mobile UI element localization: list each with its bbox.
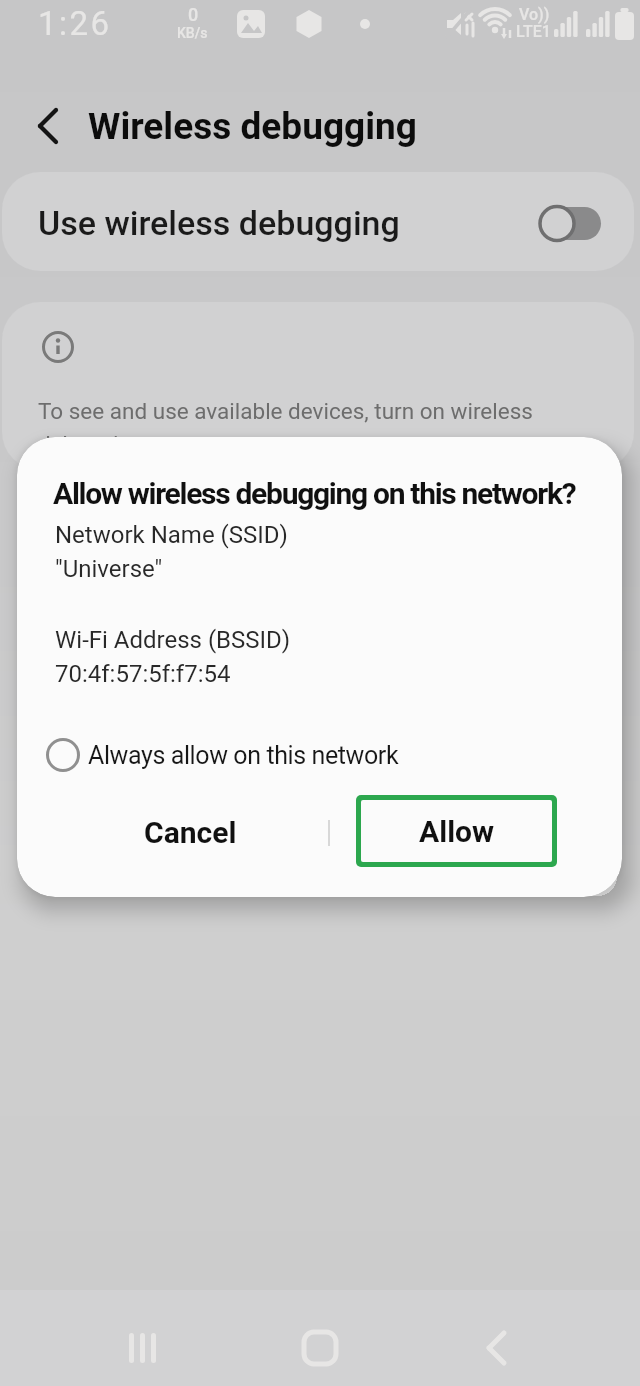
- button[interactable]: [120, 1323, 170, 1373]
- staticText: KB/s: [177, 25, 208, 41]
- button[interactable]: [295, 1323, 345, 1373]
- staticText: Network Name (SSID): [55, 521, 288, 549]
- staticText: debugging: [38, 431, 144, 457]
- button[interactable]: Allow: [356, 795, 557, 867]
- button[interactable]: [40, 728, 460, 782]
- staticText: Vo)): [519, 5, 550, 24]
- staticText: To see and use available devices, turn o…: [38, 398, 533, 424]
- staticText: LTE1: [516, 22, 551, 41]
- staticText: Use wireless debugging: [38, 203, 400, 243]
- staticText: Cancel: [144, 815, 237, 850]
- staticText: 0: [188, 4, 199, 25]
- staticText: Always allow on this network: [88, 741, 399, 770]
- staticText: Allow wireless debugging on this network…: [53, 476, 576, 511]
- button[interactable]: [2, 172, 634, 271]
- staticText: "Universe": [55, 555, 163, 583]
- staticText: Allow: [419, 814, 495, 849]
- button[interactable]: [472, 1323, 522, 1373]
- staticText: Wireless debugging: [88, 105, 417, 148]
- button[interactable]: Cancel: [95, 796, 285, 868]
- button[interactable]: [28, 107, 68, 147]
- staticText: Wi-Fi Address (BSSID): [55, 626, 291, 654]
- staticText: 1:26: [38, 4, 112, 43]
- staticText: 70:4f:57:5f:f7:54: [55, 660, 231, 688]
